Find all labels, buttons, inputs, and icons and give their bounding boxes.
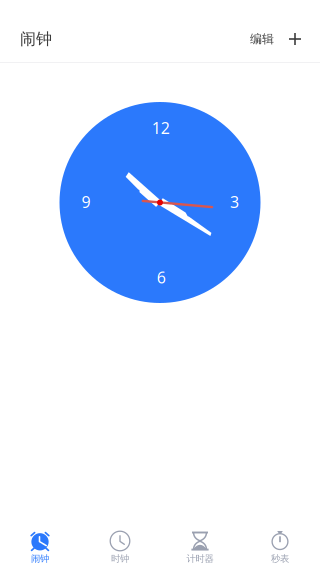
button[interactable]: 编辑 — [250, 32, 274, 46]
staticText: 秒表 — [271, 553, 289, 564]
staticText: 3 — [230, 191, 239, 212]
staticText: 12 — [152, 117, 170, 138]
staticText: 闹钟 — [31, 553, 49, 564]
staticText: 编辑 — [250, 32, 274, 46]
staticText: 闹钟 — [20, 29, 52, 49]
staticText: 9 — [81, 191, 90, 212]
staticText: 计时器 — [186, 553, 213, 564]
staticText: 6 — [157, 267, 166, 288]
button[interactable]: Add alarm — [288, 29, 302, 49]
button[interactable]: 计时器 — [160, 517, 240, 570]
button[interactable]: 时钟 — [80, 517, 160, 570]
button[interactable]: 秒表 — [240, 517, 320, 570]
staticText: 时钟 — [111, 553, 129, 564]
button[interactable]: 闹钟 — [0, 517, 80, 570]
